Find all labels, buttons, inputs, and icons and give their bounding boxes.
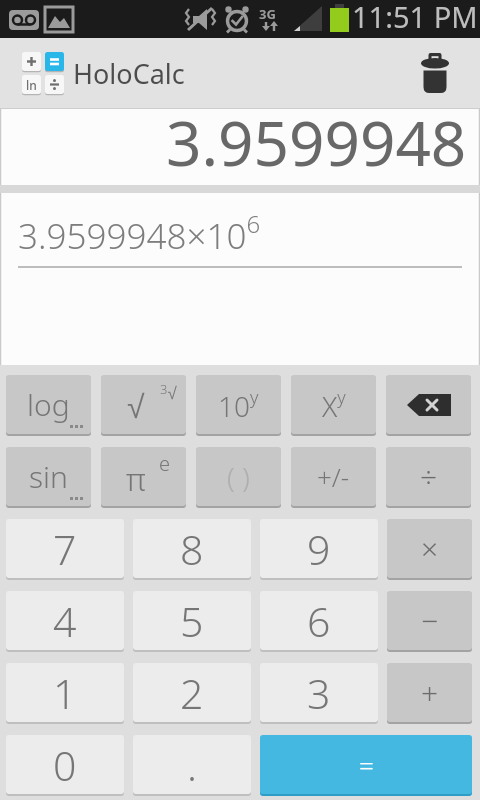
button[interactable]: 2 (133, 663, 251, 724)
button[interactable]: 0 (6, 735, 124, 796)
button[interactable]: . (133, 735, 251, 796)
staticText: +/- (317, 459, 350, 494)
staticText: 7 (53, 521, 77, 577)
staticText: π (126, 457, 146, 501)
button[interactable]: Xy (291, 375, 376, 436)
button[interactable]: 7 (6, 519, 124, 580)
staticText: 10y (218, 385, 259, 425)
staticText: ÷ (420, 456, 438, 497)
staticText: 9 (307, 521, 331, 577)
button[interactable]: 3 (260, 663, 378, 724)
button[interactable]: 5 (133, 591, 251, 652)
staticText: 6 (307, 593, 331, 649)
staticText: + (421, 672, 439, 713)
button[interactable]: √ (101, 375, 186, 436)
button[interactable]: + (387, 663, 472, 724)
button[interactable]: +/- (291, 447, 376, 508)
button[interactable]: 8 (133, 519, 251, 580)
button[interactable]: ÷ (386, 447, 471, 508)
staticText: 4 (53, 593, 77, 649)
button[interactable]: = (260, 735, 472, 796)
staticText: 3.9599948 (166, 100, 467, 177)
staticText: ln (26, 77, 37, 93)
staticText: = (359, 747, 374, 782)
button[interactable]: ( ) (196, 447, 281, 508)
staticText: HoloCalc (73, 55, 185, 92)
staticText: 1 (53, 665, 77, 721)
button[interactable] (386, 375, 471, 436)
button[interactable]: sin (6, 447, 91, 508)
staticText: sin (29, 456, 68, 497)
staticText: ( ) (227, 458, 250, 496)
staticText: × (421, 528, 439, 569)
button[interactable]: 10y (196, 375, 281, 436)
button[interactable]: log (6, 375, 91, 436)
staticText: 3√ (160, 380, 177, 403)
staticText: Xy (322, 385, 346, 425)
staticText: 3 (307, 665, 331, 721)
button[interactable]: × (387, 519, 472, 580)
staticText: e (159, 450, 171, 477)
staticText: √ (127, 389, 145, 425)
staticText: . (187, 737, 198, 793)
staticText: 3.9599948×106 (18, 207, 261, 259)
button[interactable]: 1 (6, 663, 124, 724)
staticText: 5 (180, 593, 204, 649)
button[interactable]: 4 (6, 591, 124, 652)
button[interactable]: − (387, 591, 472, 652)
staticText: 0 (53, 737, 77, 793)
staticText: − (421, 600, 439, 641)
staticText: 11:51 PM (352, 0, 478, 35)
button[interactable]: 6 (260, 591, 378, 652)
staticText: 2 (180, 665, 204, 721)
staticText: 8 (180, 521, 204, 577)
staticText: log (27, 384, 70, 425)
staticText: 3G (259, 5, 276, 23)
button[interactable] (405, 43, 465, 103)
button[interactable]: π (101, 447, 186, 508)
button[interactable]: 9 (260, 519, 378, 580)
